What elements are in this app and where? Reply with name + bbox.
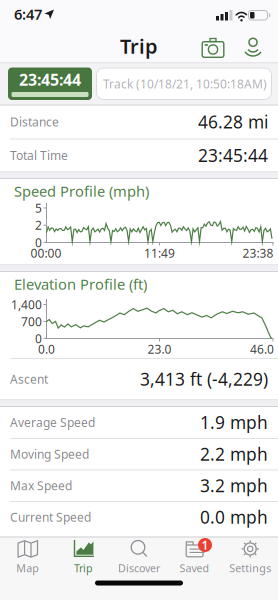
button[interactable]: Camera — [198, 35, 228, 61]
staticText: 0 — [35, 330, 42, 346]
staticText: 1.9 mph — [200, 411, 268, 434]
staticText: 1,400 — [11, 296, 42, 312]
staticText: 0 — [35, 234, 42, 250]
staticText: Ascent — [10, 371, 48, 387]
staticText: 6:47 — [14, 4, 42, 24]
staticText: Trip — [120, 33, 158, 59]
staticText: Settings — [229, 561, 271, 575]
staticText: 1 — [201, 537, 208, 553]
staticText: Moving Speed — [10, 446, 89, 462]
staticText: 23:45:44 — [19, 69, 81, 90]
staticText: 700 — [21, 313, 42, 329]
staticText: Average Speed — [10, 414, 95, 430]
staticText: 11:49 — [144, 245, 175, 261]
staticText: 2 — [35, 217, 42, 233]
staticText: 23:38 — [242, 245, 273, 261]
staticText: Elevation Profile (ft) — [14, 274, 147, 294]
staticText: 3,413 ft (-4,229) — [140, 367, 268, 390]
staticText: Distance — [10, 114, 59, 130]
button[interactable]: Saved — [167, 536, 222, 578]
staticText: 00:00 — [30, 245, 61, 261]
staticText: 46.28 mi — [198, 110, 268, 133]
staticText: Max Speed — [10, 477, 72, 493]
button[interactable]: Settings — [223, 536, 278, 578]
staticText: 23:45:44 — [198, 144, 268, 167]
staticText: 3.2 mph — [200, 474, 268, 497]
staticText: Total Time — [10, 147, 68, 163]
button[interactable]: Record Track — [240, 35, 266, 61]
staticText: 5 — [35, 200, 42, 216]
button[interactable]: Track name — [96, 67, 272, 100]
button[interactable]: Discover — [111, 536, 166, 578]
staticText: Trip — [74, 561, 93, 575]
staticText: 0.0 — [38, 341, 55, 357]
button[interactable]: Map — [0, 536, 55, 578]
button[interactable]: Trip — [56, 536, 111, 578]
staticText: 2.2 mph — [200, 442, 268, 465]
staticText: Discover — [118, 561, 160, 575]
staticText: Speed Profile (mph) — [14, 181, 149, 201]
staticText: Current Speed — [10, 509, 91, 525]
staticText: Map — [16, 561, 39, 575]
staticText: Track (10/18/21, 10:50:18AM) — [103, 76, 267, 92]
staticText: 23.0 — [147, 341, 171, 357]
staticText: 0.0 mph — [200, 505, 268, 528]
button[interactable]: Trip timer — [8, 67, 92, 100]
staticText: 46.0 — [250, 341, 274, 357]
staticText: Saved — [180, 561, 210, 575]
